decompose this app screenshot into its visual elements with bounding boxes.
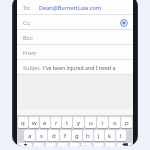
staticText: t <box>66 119 69 127</box>
button[interactable]: f <box>60 130 71 141</box>
button[interactable]: j <box>94 130 104 141</box>
button[interactable]: x <box>45 143 56 146</box>
button[interactable]: r <box>51 117 61 128</box>
staticText: p <box>125 119 129 127</box>
staticText: s <box>40 132 43 140</box>
button[interactable]: v <box>69 143 80 146</box>
button[interactable]: Bcc: <box>17 30 133 44</box>
staticText: i <box>102 119 104 127</box>
button[interactable]: l <box>116 130 126 141</box>
button[interactable]: e <box>40 117 50 128</box>
staticText: Dean@BurnettLaw.com <box>39 4 101 11</box>
button[interactable]: h <box>83 130 93 141</box>
staticText: I've been injured and I need a lawyer! <box>43 64 133 71</box>
staticText: r <box>55 119 58 127</box>
button[interactable]: Subject: <box>17 60 133 74</box>
staticText: y <box>77 119 81 127</box>
staticText: o <box>113 119 117 127</box>
staticText: From: <box>23 49 37 56</box>
button[interactable]: w <box>29 117 39 128</box>
button[interactable]: b <box>81 143 92 146</box>
button[interactable]: Add recipient <box>119 18 128 27</box>
staticText: l <box>120 132 122 140</box>
staticText: h <box>86 132 90 140</box>
button[interactable]: To: <box>17 0 133 14</box>
button[interactable]: z <box>33 143 44 146</box>
button[interactable]: t <box>62 117 72 128</box>
staticText: j <box>98 132 100 140</box>
staticText: b <box>85 143 89 146</box>
staticText: Bcc: <box>23 34 34 41</box>
button[interactable]: n <box>93 143 104 146</box>
button[interactable]: y <box>73 117 84 128</box>
button[interactable]: a <box>24 130 35 141</box>
button[interactable]: i <box>97 117 108 128</box>
staticText: e <box>43 119 47 127</box>
staticText: Cc: <box>23 19 31 26</box>
staticText: To: <box>23 4 31 11</box>
button[interactable]: g <box>72 130 82 141</box>
staticText: w <box>32 119 37 127</box>
staticText: f <box>64 132 67 140</box>
button[interactable]: m <box>105 143 116 146</box>
staticText: g <box>75 132 79 140</box>
staticText: a <box>28 132 32 140</box>
staticText: k <box>108 132 112 140</box>
staticText: q <box>21 119 25 127</box>
staticText: Subject: <box>23 64 41 71</box>
button[interactable]: u <box>85 117 96 128</box>
staticText: d <box>52 132 56 140</box>
button[interactable]: Shift <box>18 143 32 146</box>
button[interactable]: q <box>18 117 28 128</box>
button[interactable]: p <box>121 117 132 128</box>
button[interactable]: From: <box>17 45 133 59</box>
button[interactable]: o <box>109 117 120 128</box>
button[interactable]: s <box>36 130 47 141</box>
button[interactable]: c <box>57 143 68 146</box>
button[interactable]: k <box>105 130 115 141</box>
staticText: u <box>89 119 93 127</box>
button[interactable]: Backspace <box>117 143 132 146</box>
button[interactable]: d <box>48 130 59 141</box>
